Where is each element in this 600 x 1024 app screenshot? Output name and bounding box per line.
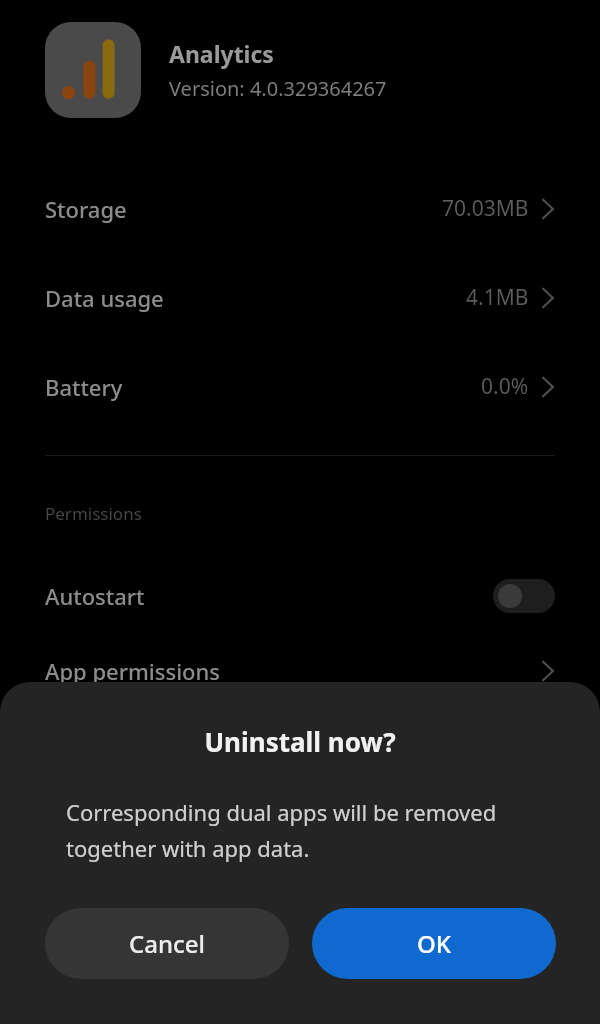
button[interactable]: Cancel bbox=[45, 908, 289, 979]
button[interactable]: Storage bbox=[0, 164, 600, 253]
staticText: Battery bbox=[45, 372, 481, 402]
button[interactable]: Analytics app icon bbox=[0, 18, 600, 122]
button[interactable]: App permissions bbox=[0, 640, 600, 702]
staticText: Version: 4.0.329364267 bbox=[169, 75, 387, 102]
staticText: Analytics bbox=[169, 38, 274, 69]
staticText: Permissions bbox=[45, 502, 142, 525]
staticText: 70.03MB bbox=[442, 194, 529, 223]
staticText: App permissions bbox=[45, 656, 541, 686]
button[interactable]: Battery bbox=[0, 342, 600, 431]
button[interactable]: Autostart toggle, off bbox=[493, 579, 555, 613]
other: Analytics app icon bbox=[45, 22, 141, 118]
staticText: Cancel bbox=[129, 927, 206, 960]
staticText: OK bbox=[417, 927, 451, 960]
staticText: Storage bbox=[45, 194, 442, 224]
staticText: 0.0% bbox=[481, 372, 529, 401]
staticText: Corresponding dual apps will be removed … bbox=[66, 797, 534, 863]
button[interactable]: Autostart bbox=[0, 565, 600, 627]
staticText: Autostart bbox=[45, 581, 493, 611]
staticText: Uninstall now? bbox=[0, 724, 600, 759]
staticText: Data usage bbox=[45, 283, 466, 313]
staticText: 4.1MB bbox=[466, 283, 529, 312]
button[interactable]: OK bbox=[312, 908, 556, 979]
button[interactable]: Data usage bbox=[0, 253, 600, 342]
